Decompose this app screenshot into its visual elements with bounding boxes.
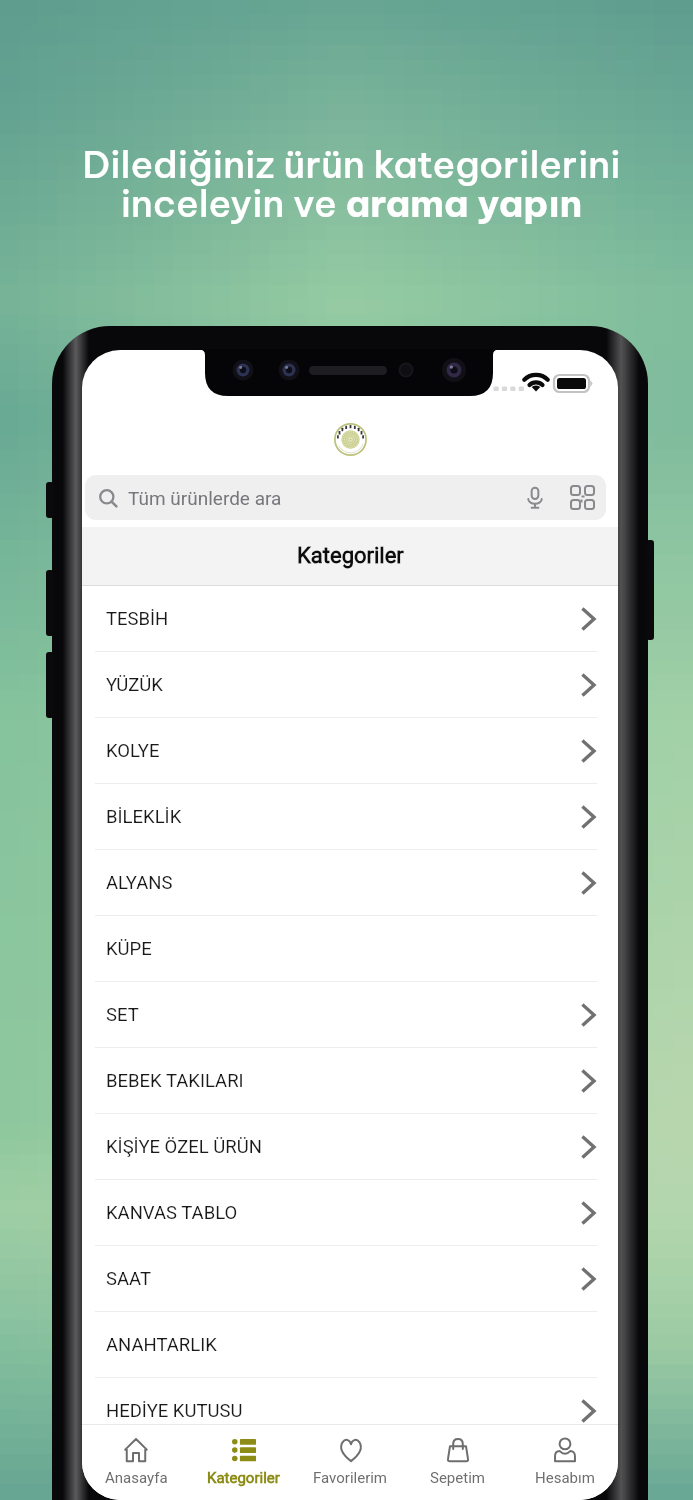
button[interactable]: KÜPE (82, 916, 618, 982)
button[interactable]: BİLEKLİK (82, 784, 618, 850)
button[interactable]: KİŞİYE ÖZEL ÜRÜN (82, 1114, 618, 1180)
staticText: Sepetim (430, 1469, 485, 1487)
button[interactable]: BEBEK TAKILARI (82, 1048, 618, 1114)
button[interactable]: KOLYE (82, 718, 618, 784)
button[interactable]: Anasayfa (82, 1425, 190, 1487)
staticText: HEDİYE KUTUSU (106, 1400, 243, 1422)
staticText: KOLYE (106, 740, 160, 762)
staticText: KANVAS TABLO (106, 1202, 238, 1224)
button[interactable]: TESBİH (82, 586, 618, 652)
button[interactable]: Kategoriler (190, 1425, 297, 1487)
staticText: TESBİH (106, 608, 169, 630)
button[interactable]: Sepetim (404, 1425, 511, 1487)
button[interactable]: ALYANS (82, 850, 618, 916)
staticText: Kategoriler (297, 543, 404, 569)
staticText: Kategoriler (207, 1469, 280, 1487)
button[interactable]: Karekod tara (566, 481, 600, 515)
staticText: YÜZÜK (106, 674, 163, 696)
button[interactable]: Sesli arama (518, 481, 552, 515)
staticText: SAAT (106, 1268, 151, 1290)
staticText: Dilediğiniz ürün kategorilerini inceleyi… (5, 140, 693, 227)
button[interactable]: YÜZÜK (82, 652, 618, 718)
staticText: Tüm ürünlerde ara (128, 487, 282, 509)
staticText: Favorilerim (313, 1469, 388, 1487)
staticText: ANAHTARLIK (106, 1334, 217, 1356)
staticText: Hesabım (535, 1469, 595, 1487)
staticText: BEBEK TAKILARI (106, 1070, 244, 1092)
staticText: KÜPE (106, 938, 152, 960)
button[interactable]: Favorilerim (297, 1425, 404, 1487)
staticText: ALYANS (106, 872, 173, 894)
staticText: SET (106, 1004, 139, 1026)
button[interactable]: SET (82, 982, 618, 1048)
button[interactable]: SAAT (82, 1246, 618, 1312)
button[interactable]: Hesabım (511, 1425, 618, 1487)
button[interactable]: Tüm ürünlerde ara (85, 475, 606, 520)
staticText: KİŞİYE ÖZEL ÜRÜN (106, 1136, 262, 1158)
staticText: Anasayfa (105, 1469, 168, 1487)
button[interactable]: HEDİYE KUTUSU (82, 1378, 618, 1444)
staticText: BİLEKLİK (106, 806, 182, 828)
button[interactable]: ANAHTARLIK (82, 1312, 618, 1378)
button[interactable]: KANVAS TABLO (82, 1180, 618, 1246)
